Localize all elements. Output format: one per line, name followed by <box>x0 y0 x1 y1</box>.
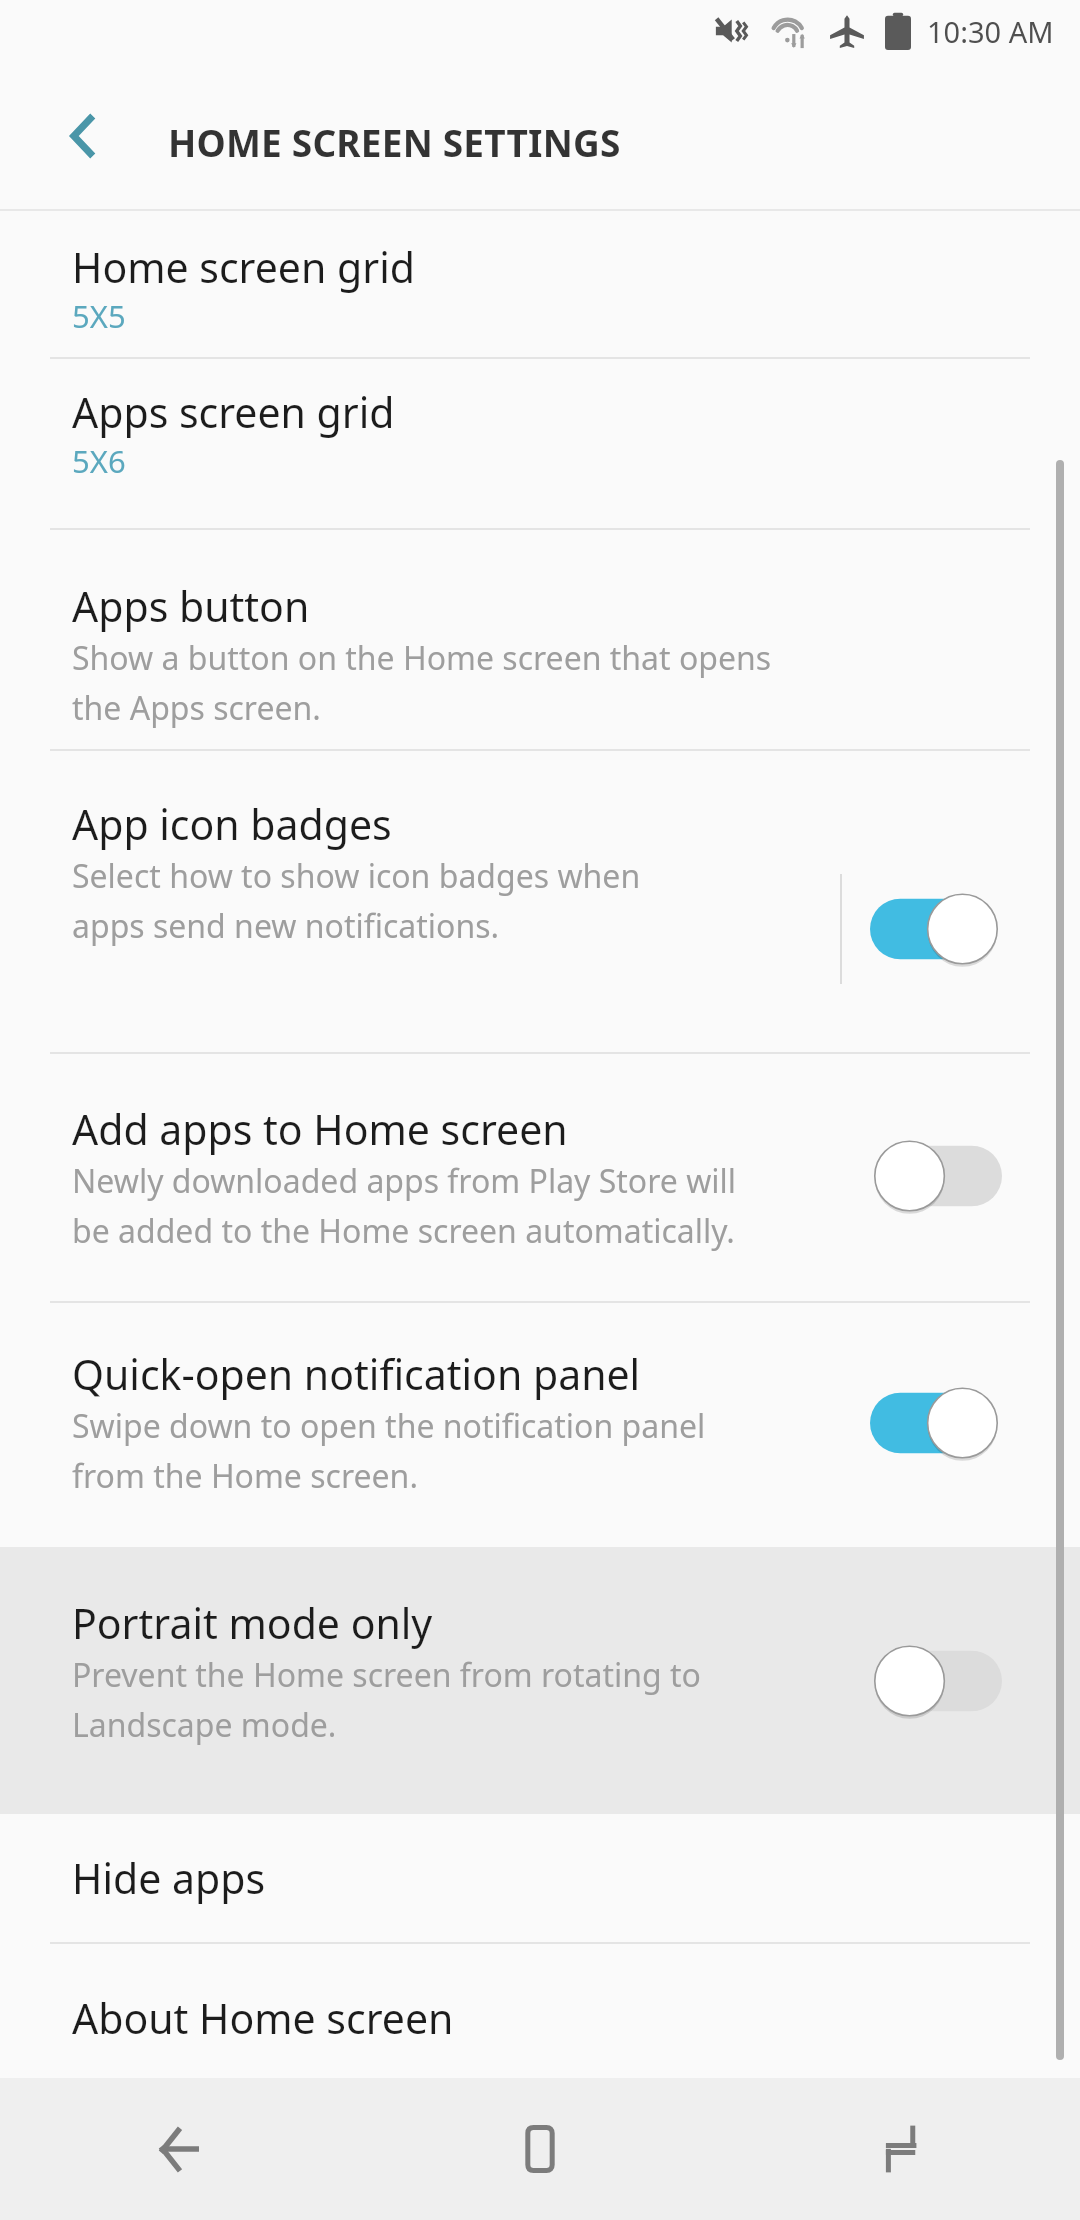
staticText: Add apps to Home screen <box>72 1101 568 1157</box>
button[interactable]: Portrait mode only <box>858 1626 1038 1736</box>
button[interactable]: Quick-open notification panel <box>858 1368 1038 1478</box>
button[interactable]: Recents <box>720 2078 1080 2220</box>
staticText: 5X6 <box>72 440 126 482</box>
staticText: Apps button <box>72 578 310 634</box>
button[interactable]: App icon badges <box>0 751 1080 1052</box>
button[interactable]: Quick-open notification panel <box>0 1303 1080 1547</box>
staticText: App icon badges <box>72 796 392 852</box>
button[interactable]: Home <box>360 2078 720 2220</box>
button[interactable]: Add apps to Home screen <box>858 1121 1038 1231</box>
staticText: the Apps screen. <box>72 686 321 730</box>
staticText: About Home screen <box>72 1990 454 2046</box>
button[interactable]: About Home screen <box>0 1944 1080 2078</box>
staticText: Portrait mode only <box>72 1595 433 1651</box>
staticText: Landscape mode. <box>72 1703 337 1747</box>
staticText: Show a button on the Home screen that op… <box>72 636 772 680</box>
staticText: apps send new notifications. <box>72 904 500 948</box>
staticText: from the Home screen. <box>72 1454 418 1498</box>
button[interactable]: Apps screen grid <box>0 359 1080 528</box>
staticText: Hide apps <box>72 1850 266 1906</box>
button[interactable]: Apps button <box>0 530 1080 749</box>
button[interactable]: Portrait mode only <box>0 1547 1080 1814</box>
staticText: HOME SCREEN SETTINGS <box>168 117 621 167</box>
staticText: Home screen grid <box>72 239 415 295</box>
staticText: be added to the Home screen automaticall… <box>72 1209 735 1253</box>
button[interactable]: Add apps to Home screen <box>0 1054 1080 1301</box>
staticText: Apps screen grid <box>72 384 395 440</box>
button[interactable]: App icon badges <box>858 874 1038 984</box>
staticText: Newly downloaded apps from Play Store wi… <box>72 1159 737 1203</box>
button[interactable]: Back <box>35 88 131 184</box>
button[interactable]: Hide apps <box>0 1814 1080 1942</box>
staticText: 10:30 AM <box>927 12 1054 51</box>
staticText: Quick-open notification panel <box>72 1346 641 1402</box>
staticText: Select how to show icon badges when <box>72 854 641 898</box>
staticText: Prevent the Home screen from rotating to <box>72 1653 701 1697</box>
button[interactable]: Home screen grid <box>0 211 1080 357</box>
button[interactable]: Back <box>0 2078 360 2220</box>
staticText: 5X5 <box>72 295 126 337</box>
staticText: Swipe down to open the notification pane… <box>72 1404 706 1448</box>
